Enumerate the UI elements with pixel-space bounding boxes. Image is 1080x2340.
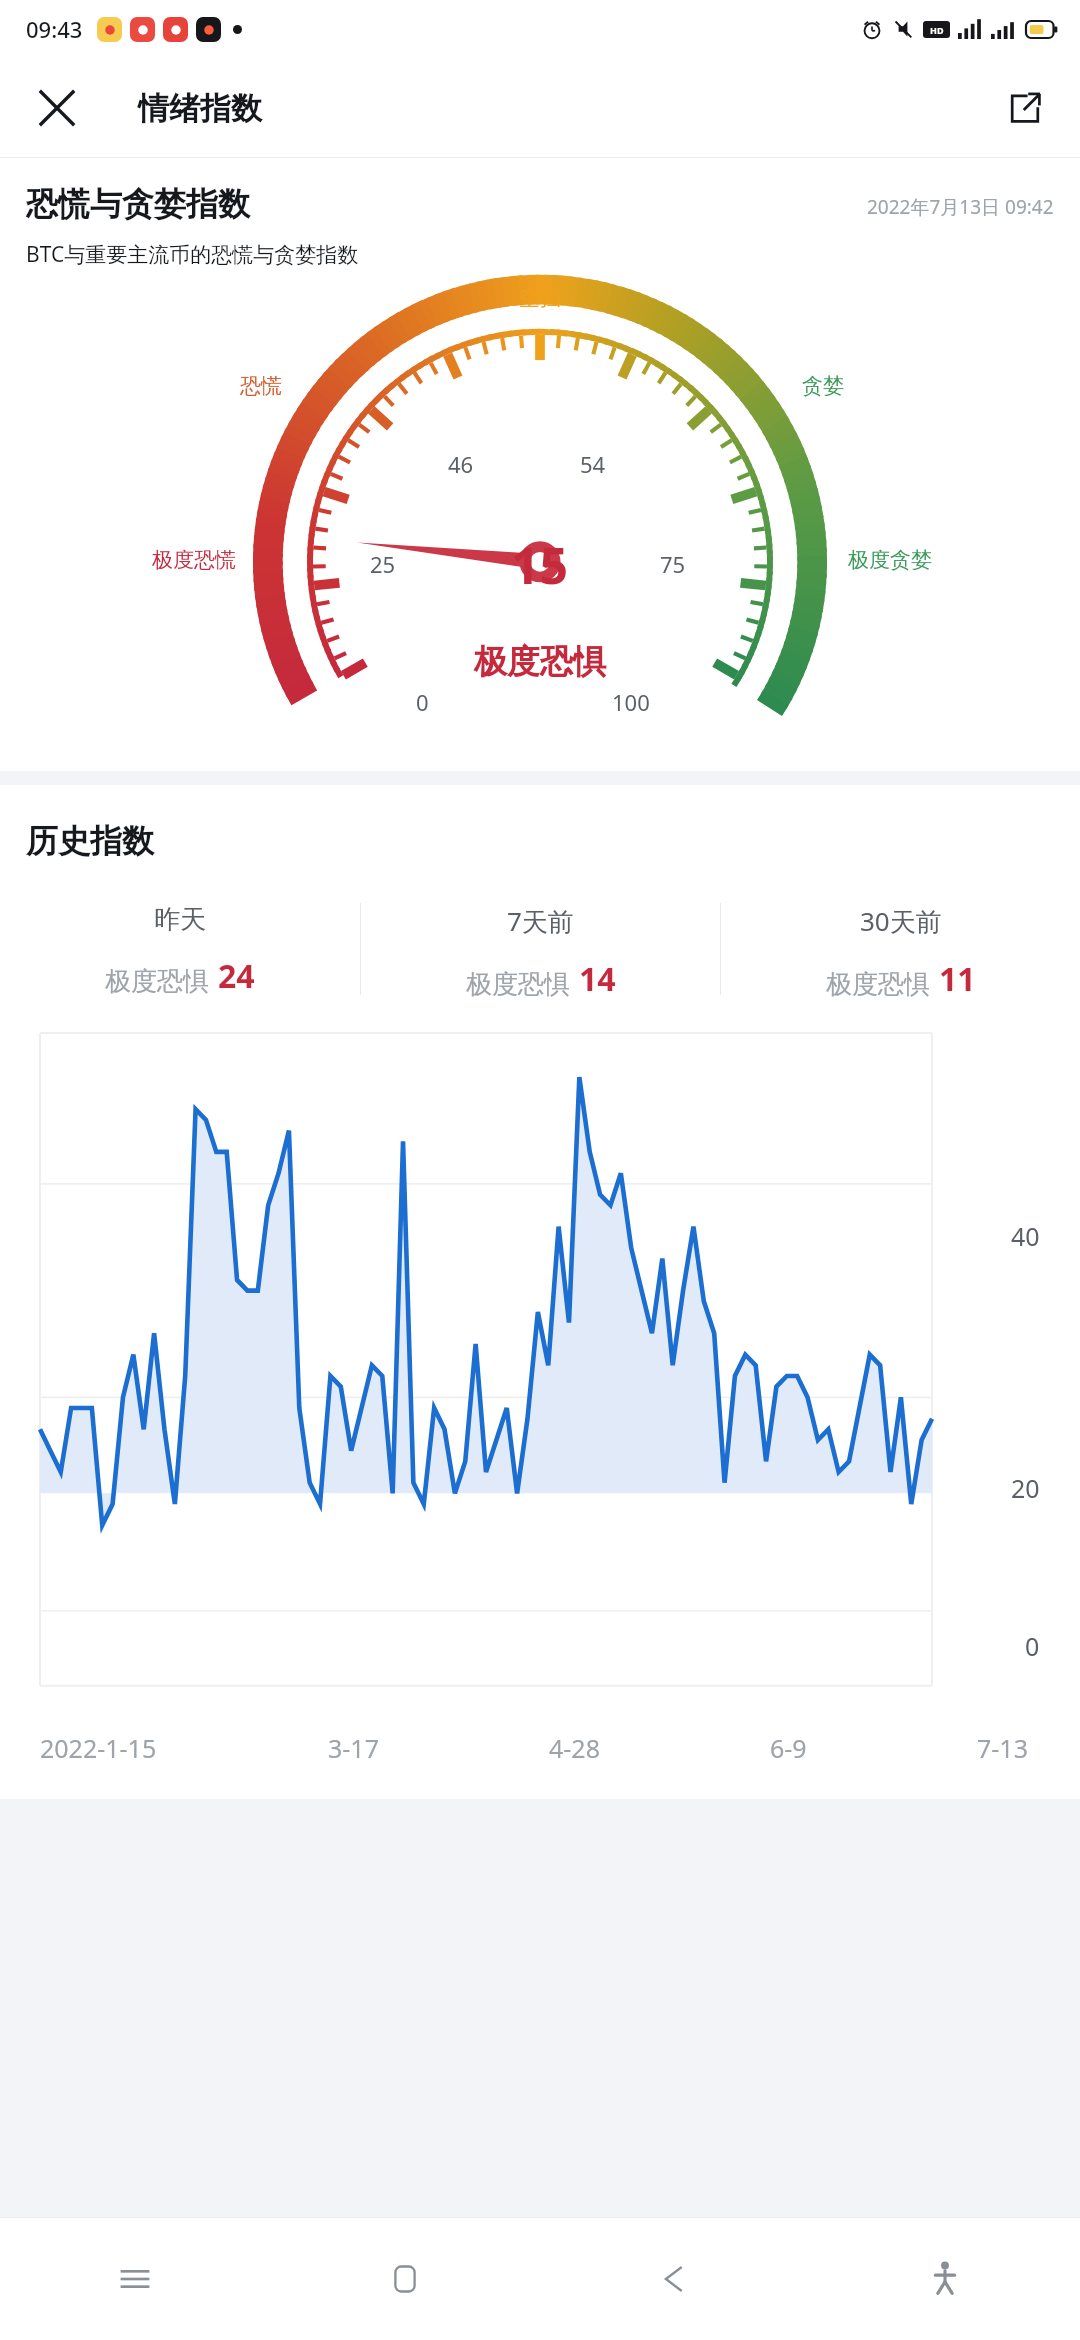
button[interactable]: Back bbox=[540, 2218, 810, 2340]
staticText: 极度恐惧 bbox=[826, 968, 930, 1001]
button[interactable]: Accessibility bbox=[810, 2218, 1080, 2340]
button[interactable]: 昨天 bbox=[0, 903, 360, 1011]
staticText: 11 bbox=[939, 957, 976, 1001]
staticText: 情绪指数 bbox=[138, 89, 262, 128]
staticText: 14 bbox=[579, 957, 616, 1001]
button[interactable]: Home bbox=[270, 2218, 540, 2340]
staticText: 24 bbox=[218, 954, 255, 998]
staticText: HD bbox=[930, 24, 944, 36]
staticText: 75 bbox=[660, 549, 686, 579]
staticText: 2022年7月13日 09:42 bbox=[867, 194, 1054, 220]
staticText: 6-9 bbox=[770, 1731, 807, 1765]
button[interactable]: Recents bbox=[0, 2218, 270, 2340]
staticText: 历史指数 bbox=[26, 821, 154, 861]
staticText: 20 bbox=[1011, 1471, 1040, 1505]
button[interactable]: 30天前 bbox=[721, 903, 1080, 1011]
staticText: 恐慌与贪婪指数 bbox=[26, 184, 250, 224]
staticText: 0 bbox=[1025, 1629, 1040, 1663]
staticText: 09:43 bbox=[26, 14, 83, 44]
staticText: 昨天 bbox=[154, 903, 206, 936]
staticText: 极度恐慌 bbox=[152, 547, 236, 573]
staticText: 30天前 bbox=[860, 903, 942, 939]
staticText: 7-13 bbox=[977, 1731, 1028, 1765]
staticText: 空挡 bbox=[519, 285, 561, 311]
button[interactable]: 7天前 bbox=[361, 903, 720, 1011]
staticText: 3-17 bbox=[328, 1731, 379, 1765]
staticText: 4-28 bbox=[549, 1731, 600, 1765]
staticText: 极度贪婪 bbox=[848, 547, 932, 573]
staticText: 7天前 bbox=[507, 903, 574, 939]
staticText: 极度恐惧 bbox=[474, 641, 606, 683]
staticText: 2022-1-15 bbox=[40, 1731, 157, 1765]
staticText: 0 bbox=[416, 687, 429, 717]
staticText: 极度恐惧 bbox=[105, 965, 209, 998]
staticText: 25 bbox=[370, 549, 396, 579]
staticText: 40 bbox=[1011, 1219, 1040, 1253]
staticText: 100 bbox=[612, 687, 650, 717]
staticText: 贪婪 bbox=[802, 373, 844, 399]
staticText: BTC与重要主流币的恐慌与贪婪指数 bbox=[26, 240, 359, 269]
staticText: 极度恐惧 bbox=[466, 968, 570, 1001]
staticText: 54 bbox=[580, 449, 606, 479]
staticText: 15 bbox=[511, 531, 569, 599]
staticText: 恐慌 bbox=[240, 373, 282, 399]
button[interactable]: Share bbox=[992, 75, 1058, 141]
staticText: 46 bbox=[448, 449, 474, 479]
button[interactable]: Close bbox=[24, 75, 90, 141]
